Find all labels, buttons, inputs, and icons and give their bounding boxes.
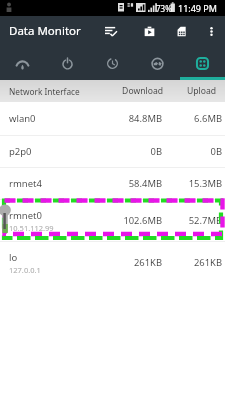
staticText: 11:49 PM: [178, 2, 217, 14]
button[interactable]: rmnet4: [0, 168, 225, 199]
button[interactable]: p2p0: [0, 136, 225, 167]
staticText: Network Interface: [9, 86, 104, 97]
staticText: 15.3MB: [163, 177, 222, 190]
staticText: 6.6MB: [163, 112, 222, 125]
staticText: p2p0: [9, 145, 32, 158]
staticText: 0B: [163, 145, 222, 158]
staticText: Upload: [164, 85, 216, 97]
button[interactable]: App list: [132, 16, 166, 46]
button[interactable]: lo: [0, 242, 225, 283]
staticText: 102.6MB: [103, 214, 162, 227]
button[interactable]: wlan0: [0, 102, 225, 135]
staticText: Data Monitor: [9, 23, 81, 39]
button[interactable]: SIM card: [166, 16, 197, 46]
staticText: 52.7MB: [163, 214, 222, 227]
button[interactable]: Wi-Fi usage: [0, 46, 45, 80]
staticText: Download: [104, 85, 163, 97]
staticText: wlan0: [9, 112, 36, 125]
button[interactable]: History: [90, 46, 135, 80]
button[interactable]: Network interfaces: [180, 46, 225, 80]
staticText: rmnet4: [9, 177, 42, 190]
button[interactable]: More options: [197, 16, 225, 46]
staticText: 10.51.112.99: [9, 223, 54, 233]
staticText: 0B: [103, 145, 162, 158]
staticText: 261KB: [103, 256, 162, 269]
staticText: 73%: [156, 3, 172, 14]
staticText: 58.4MB: [103, 177, 162, 190]
button[interactable]: Mobile usage: [45, 46, 90, 80]
staticText: lo: [9, 251, 18, 264]
button[interactable]: Global: [135, 46, 180, 80]
staticText: 127.0.0.1: [9, 265, 41, 275]
staticText: rmnet0: [9, 209, 42, 222]
button[interactable]: rmnet0: [0, 200, 225, 241]
staticText: 261KB: [163, 256, 222, 269]
staticText: 84.8MB: [103, 112, 162, 125]
button[interactable]: Sort: [90, 16, 132, 46]
